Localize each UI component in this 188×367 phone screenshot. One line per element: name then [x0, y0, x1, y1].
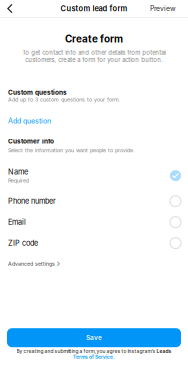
- button[interactable]: Add question: [0, 103, 59, 127]
- staticText: Add up to 3 custom questions to your for…: [8, 96, 121, 103]
- button[interactable]: Back: [0, 0, 20, 17]
- staticText: Custom questions: [8, 88, 67, 96]
- staticText: Custom lead form: [60, 4, 127, 13]
- staticText: Preview: [150, 4, 176, 13]
- staticText: Terms of Service.: [73, 354, 115, 360]
- staticText: Add question: [8, 117, 51, 125]
- button[interactable]: Name: [0, 161, 188, 191]
- button[interactable]: Email: [0, 212, 188, 233]
- staticText: Phone number: [8, 197, 56, 206]
- button[interactable]: Save: [0, 328, 188, 347]
- staticText: Required: [8, 177, 29, 184]
- staticText: Save: [86, 334, 102, 342]
- button[interactable]: ZIP code: [0, 233, 188, 254]
- button[interactable]: Preview: [143, 0, 188, 17]
- button[interactable]: Terms of Service.: [73, 354, 115, 360]
- staticText: Customer info: [8, 137, 54, 145]
- staticText: Email: [8, 218, 26, 227]
- staticText: By creating and submitting a form, you a…: [16, 348, 171, 354]
- staticText: ZIP code: [8, 239, 38, 248]
- staticText: Name: [8, 167, 28, 176]
- staticText: Advanced settings: [8, 261, 55, 267]
- button[interactable]: Advanced settings: [0, 257, 68, 271]
- staticText: To get contact info and other details fr…: [22, 49, 166, 63]
- staticText: Select the information you want people t…: [8, 147, 135, 154]
- staticText: Create form: [65, 33, 123, 45]
- button[interactable]: Phone number: [0, 191, 188, 212]
